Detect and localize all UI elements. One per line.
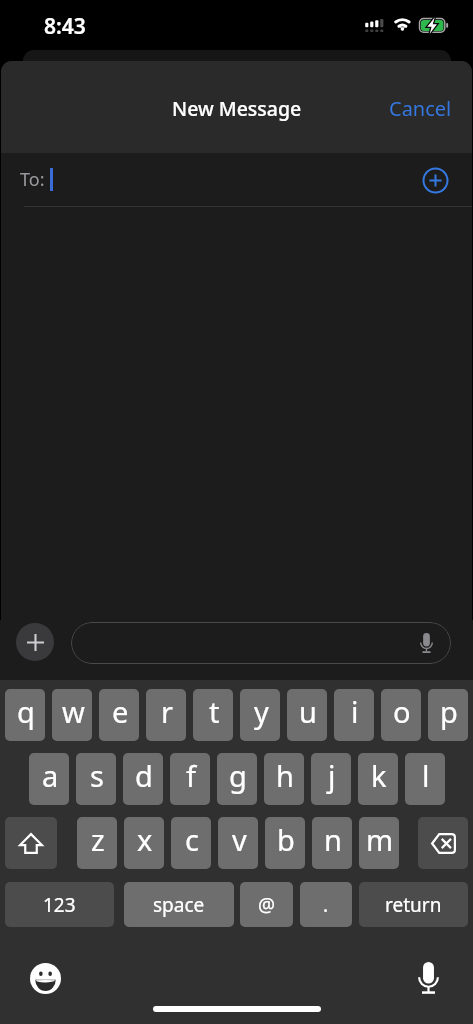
button[interactable]: u	[287, 689, 327, 741]
staticText: 8:43	[44, 12, 86, 41]
button[interactable]: v	[218, 817, 258, 869]
staticText: l	[422, 756, 430, 795]
button[interactable]: Cancel	[375, 87, 472, 130]
button[interactable]: m	[359, 817, 399, 869]
staticText: r	[161, 692, 173, 731]
button[interactable]: return	[359, 882, 468, 927]
staticText: z	[91, 820, 105, 859]
staticText: p	[440, 692, 458, 731]
staticText: n	[324, 820, 342, 859]
button[interactable]: p	[428, 689, 468, 741]
staticText: t	[209, 692, 220, 731]
button[interactable]: b	[265, 817, 305, 869]
button[interactable]: Backspace	[418, 817, 468, 869]
button[interactable]: e	[99, 689, 139, 741]
button[interactable]: o	[381, 689, 421, 741]
staticText: c	[185, 820, 199, 859]
staticText: k	[371, 756, 387, 795]
staticText: x	[137, 820, 153, 859]
staticText: u	[299, 692, 317, 731]
staticText: To:	[20, 167, 45, 192]
staticText: y	[254, 692, 269, 731]
button[interactable]: Attach	[16, 623, 54, 661]
button[interactable]: Emoji	[24, 957, 66, 999]
button[interactable]: .	[300, 882, 352, 927]
button[interactable]: q	[5, 689, 45, 741]
button[interactable]	[71, 622, 451, 664]
staticText: s	[90, 756, 104, 795]
staticText: g	[229, 756, 247, 795]
staticText: v	[232, 820, 247, 859]
staticText: j	[328, 756, 336, 795]
button[interactable]: s	[76, 753, 116, 805]
staticText: q	[17, 692, 35, 731]
button[interactable]: i	[334, 689, 374, 741]
button[interactable]: l	[405, 753, 445, 805]
button[interactable]: d	[123, 753, 163, 805]
staticText: d	[135, 756, 153, 795]
staticText: space	[153, 892, 205, 918]
button[interactable]: x	[124, 817, 164, 869]
staticText: @	[258, 892, 276, 918]
button[interactable]: Add contact	[417, 162, 453, 198]
staticText: e	[112, 692, 129, 731]
button[interactable]: c	[171, 817, 211, 869]
staticText: i	[351, 692, 359, 731]
staticText: m	[366, 820, 394, 859]
button[interactable]: r	[146, 689, 186, 741]
button[interactable]: h	[264, 753, 304, 805]
button[interactable]: y	[240, 689, 280, 741]
staticText: 123	[43, 892, 76, 918]
button[interactable]: space	[124, 882, 234, 927]
button[interactable]: j	[311, 753, 351, 805]
button[interactable]: w	[52, 689, 92, 741]
staticText: o	[393, 692, 411, 731]
staticText: f	[186, 756, 196, 795]
staticText: New Message	[172, 95, 302, 122]
staticText: return	[385, 892, 442, 918]
staticText: Cancel	[389, 95, 452, 122]
button[interactable]: z	[77, 817, 117, 869]
staticText: a	[42, 756, 59, 795]
staticText: w	[62, 692, 85, 731]
button[interactable]: Shift	[5, 817, 57, 869]
button[interactable]: f	[170, 753, 210, 805]
button[interactable]: a	[29, 753, 69, 805]
staticText: .	[323, 892, 329, 918]
button[interactable]: t	[193, 689, 233, 741]
button[interactable]: n	[312, 817, 352, 869]
button[interactable]: @	[240, 882, 293, 927]
staticText: h	[276, 756, 294, 795]
staticText: b	[277, 820, 295, 859]
button[interactable]: 123	[5, 882, 114, 927]
button[interactable]: k	[358, 753, 398, 805]
button[interactable]: g	[217, 753, 257, 805]
button[interactable]: Dictation	[407, 957, 449, 999]
